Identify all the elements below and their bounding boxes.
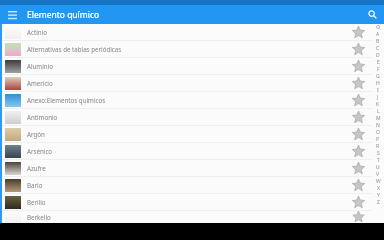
button[interactable]: Aluminio	[2, 58, 372, 74]
button[interactable]: Actinio	[2, 24, 372, 40]
button[interactable]: Add Americio to favourites	[345, 75, 371, 91]
staticText: L	[377, 108, 380, 115]
button[interactable]: Antimonio	[2, 109, 372, 125]
button[interactable]: Add Azufre to favourites	[345, 160, 371, 176]
staticText: Elemento químico	[27, 9, 100, 21]
button[interactable]: Add Berkelio to favourites	[345, 211, 371, 223]
staticText: E	[377, 59, 380, 66]
staticText: T	[377, 157, 380, 164]
staticText: Alternativas de tablas periódicas	[27, 45, 122, 53]
button[interactable]: Alternativas de tablas periódicas	[2, 41, 372, 57]
staticText: N	[376, 122, 380, 129]
staticText: F	[377, 66, 380, 73]
button[interactable]: Add Antimonio to favourites	[345, 109, 371, 125]
staticText: Bario	[27, 181, 43, 189]
staticText: W	[376, 178, 381, 185]
button[interactable]: Argón	[2, 126, 372, 142]
staticText: Argón	[27, 130, 45, 138]
button[interactable]: Search	[362, 5, 382, 24]
button[interactable]: Open navigation menu	[3, 6, 21, 24]
staticText: Antimonio	[27, 113, 58, 121]
staticText: B	[376, 38, 380, 45]
staticText: Aluminio	[27, 62, 53, 70]
button[interactable]: Bario	[2, 177, 372, 193]
staticText: X	[377, 185, 380, 192]
staticText: G	[376, 73, 380, 80]
button[interactable]: Add Actinio to favourites	[345, 24, 371, 40]
staticText: P	[376, 136, 380, 143]
staticText: Y	[377, 192, 380, 199]
staticText: O	[376, 129, 380, 136]
button[interactable]: Alphabet index	[372, 24, 384, 223]
staticText: M	[376, 115, 381, 122]
button[interactable]: Add Berilio to favourites	[345, 194, 371, 210]
button[interactable]: Add Aluminio to favourites	[345, 58, 371, 74]
button[interactable]: Add Arsénico to favourites	[345, 143, 371, 159]
button[interactable]: Berilio	[2, 194, 372, 210]
button[interactable]: Berkelio	[2, 211, 372, 223]
button[interactable]: Add Argón to favourites	[345, 126, 371, 142]
staticText: Americio	[27, 79, 53, 87]
button[interactable]: Anexo:Elementos químicos	[2, 92, 372, 108]
button[interactable]: Arsénico	[2, 143, 372, 159]
staticText: K	[376, 101, 380, 108]
staticText: R	[376, 143, 380, 150]
button[interactable]: Americio	[2, 75, 372, 91]
staticText: S	[377, 150, 380, 157]
staticText: J	[377, 94, 379, 101]
staticText: Anexo:Elementos químicos	[27, 96, 106, 104]
staticText: D	[376, 52, 380, 59]
staticText: C	[376, 45, 380, 52]
staticText: U	[376, 164, 380, 171]
staticText: I	[377, 87, 379, 94]
staticText: Actinio	[27, 28, 47, 36]
button[interactable]: Add Anexo:Elementos químicos to favourit…	[345, 92, 371, 108]
button[interactable]: Add Bario to favourites	[345, 177, 371, 193]
staticText: Z	[377, 199, 380, 206]
button[interactable]: Add Alternativas de tablas periódicas to…	[345, 41, 371, 57]
staticText: Berkelio	[27, 213, 51, 221]
staticText: V	[376, 171, 380, 178]
staticText: Azufre	[27, 164, 46, 172]
staticText: Berilio	[27, 198, 46, 206]
staticText: H	[376, 80, 380, 87]
button[interactable]: Azufre	[2, 160, 372, 176]
staticText: A	[376, 31, 380, 38]
staticText: Arsénico	[27, 147, 53, 155]
